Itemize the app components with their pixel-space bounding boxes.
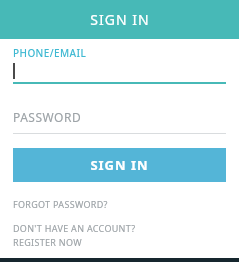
button[interactable]: SIGN IN <box>0 0 239 39</box>
button[interactable]: DON'T HAVE AN ACCOUNT? <box>13 222 136 248</box>
staticText: SIGN IN <box>90 156 149 174</box>
staticText: FORGOT PASSWORD? <box>13 198 108 210</box>
staticText: REGISTER NOW <box>13 236 82 248</box>
button[interactable]: FORGOT PASSWORD? <box>13 198 108 210</box>
staticText: PHONE/EMAIL <box>13 46 87 60</box>
button[interactable]: SIGN IN <box>13 148 226 182</box>
button[interactable]: Password input <box>13 106 226 128</box>
button[interactable]: Phone or email input <box>13 60 226 82</box>
staticText: PASSWORD <box>13 109 82 125</box>
staticText: DON'T HAVE AN ACCOUNT? <box>13 222 136 234</box>
staticText: SIGN IN <box>90 10 150 29</box>
